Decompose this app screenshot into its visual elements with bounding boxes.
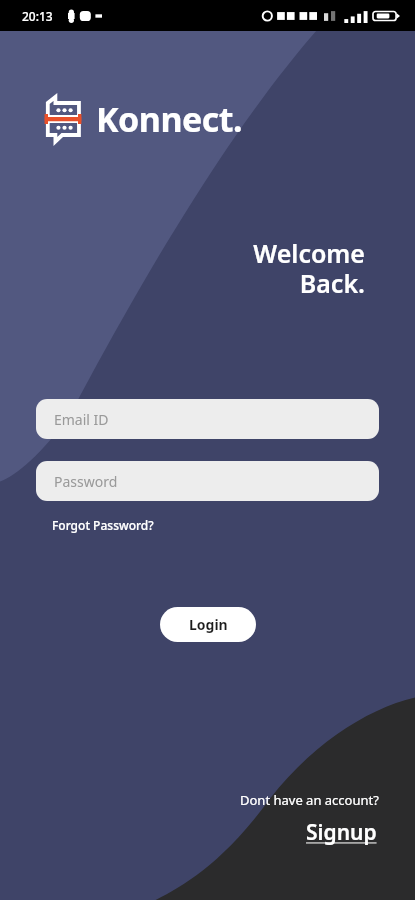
staticText: Konnect.	[96, 96, 243, 142]
staticText: Welcome Back.	[0, 236, 365, 301]
staticText: Email ID	[54, 410, 109, 429]
other: Konnect logo	[44, 94, 82, 144]
staticText: 20:13	[22, 8, 53, 24]
button[interactable]: Konnect logo	[44, 94, 243, 144]
button[interactable]: Signup	[304, 817, 379, 848]
button[interactable]: Email ID	[36, 399, 379, 439]
button[interactable]: Password	[36, 461, 379, 501]
staticText: Signup	[306, 818, 377, 847]
staticText: Forgot Password?	[52, 517, 154, 533]
button[interactable]: Login	[160, 607, 256, 642]
staticText: Dont have an account?	[240, 791, 379, 809]
staticText: Password	[54, 472, 118, 491]
button[interactable]: Forgot Password?	[50, 515, 156, 535]
staticText: Login	[189, 615, 228, 634]
